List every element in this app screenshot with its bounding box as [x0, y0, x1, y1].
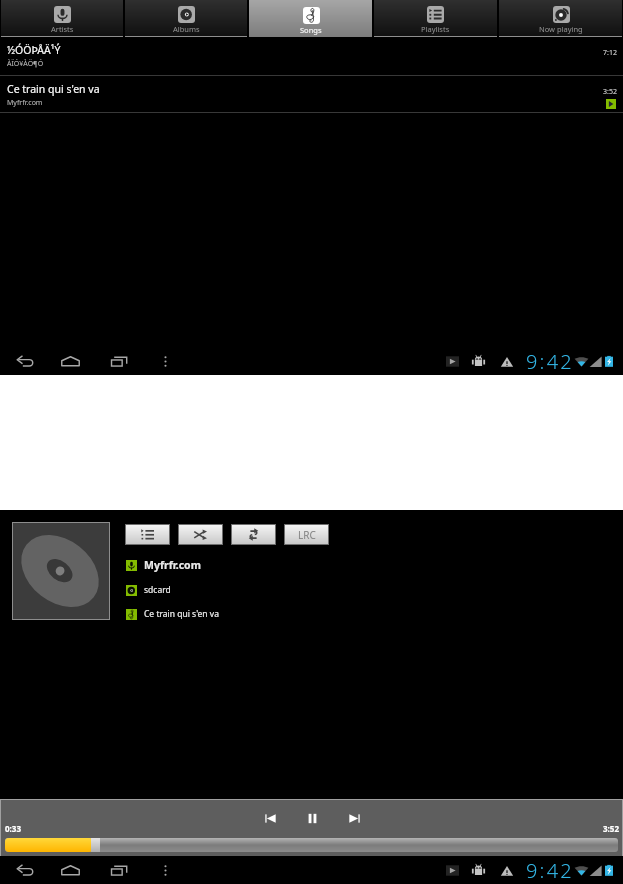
staticText: sdcard	[144, 584, 171, 596]
staticText: Myfrfr.com	[7, 98, 43, 108]
staticText: Albums	[173, 24, 200, 34]
button[interactable]: Recent apps	[108, 859, 130, 881]
staticText: Ce train qui s'en va	[7, 82, 100, 96]
button[interactable]: Now playing	[499, 0, 622, 36]
button[interactable]: Ce train qui s'en va	[126, 608, 219, 620]
button[interactable]: Playlist	[126, 525, 169, 544]
staticText: 3:52	[603, 87, 617, 97]
button[interactable]: Myfrfr.com	[126, 558, 201, 572]
button[interactable]: Songs	[249, 0, 372, 37]
staticText: 3:52	[603, 823, 619, 834]
button[interactable]: More options	[154, 859, 176, 881]
button[interactable]: Back	[14, 350, 36, 372]
button[interactable]: ½ÓÖÞÅÄ¹Ý	[0, 37, 623, 76]
staticText: Now playing	[539, 24, 583, 34]
button[interactable]: Shuffle	[179, 525, 222, 544]
staticText: ½ÓÖÞÅÄ¹Ý	[7, 43, 61, 57]
button[interactable]: Lyrics	[285, 525, 328, 544]
button[interactable]: Home	[59, 859, 81, 881]
staticText: Songs	[300, 25, 322, 35]
staticText: 7:12	[603, 48, 617, 58]
staticText: Myfrfr.com	[144, 558, 201, 572]
button[interactable]: Ce train qui s'en va	[0, 76, 623, 113]
staticText: Playlists	[421, 24, 450, 34]
button[interactable]: Album art	[13, 523, 109, 619]
staticText: 9:42	[526, 348, 574, 375]
button[interactable]: Playlists	[374, 0, 497, 36]
staticText: LRC	[298, 528, 316, 542]
staticText: ÀÏÓ¥ÀÖ¶Ó	[7, 59, 44, 69]
button[interactable]: Albums	[125, 0, 247, 36]
button[interactable]: sdcard	[126, 584, 171, 596]
staticText: 0:33	[5, 823, 21, 834]
staticText: Ce train qui s'en va	[144, 608, 219, 620]
button[interactable]: Recent apps	[108, 350, 130, 372]
button[interactable]: More options	[154, 350, 176, 372]
button[interactable]: Home	[59, 350, 81, 372]
button[interactable]: Artists	[1, 0, 123, 36]
button[interactable]: Pause	[301, 807, 323, 829]
button[interactable]: Previous	[259, 807, 281, 829]
staticText: Artists	[51, 24, 74, 34]
staticText: 9:42	[526, 857, 574, 884]
button[interactable]: Next	[343, 807, 365, 829]
button[interactable]: Seek	[5, 838, 618, 852]
button[interactable]: Back	[14, 859, 36, 881]
button[interactable]: Repeat	[232, 525, 275, 544]
